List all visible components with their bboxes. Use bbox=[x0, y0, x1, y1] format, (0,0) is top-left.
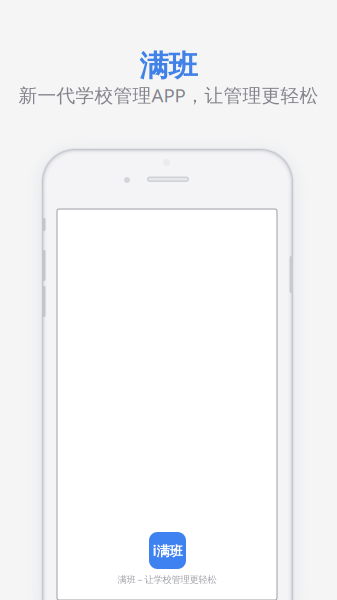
staticText: 新一代学校管理APP，让管理更轻松 bbox=[18, 83, 318, 107]
staticText: 满班 – 让学校管理更轻松 bbox=[117, 573, 216, 585]
button[interactable]: 满班 App bbox=[149, 532, 186, 569]
staticText: 满班 bbox=[139, 48, 197, 84]
staticText: i满班 bbox=[152, 542, 182, 559]
